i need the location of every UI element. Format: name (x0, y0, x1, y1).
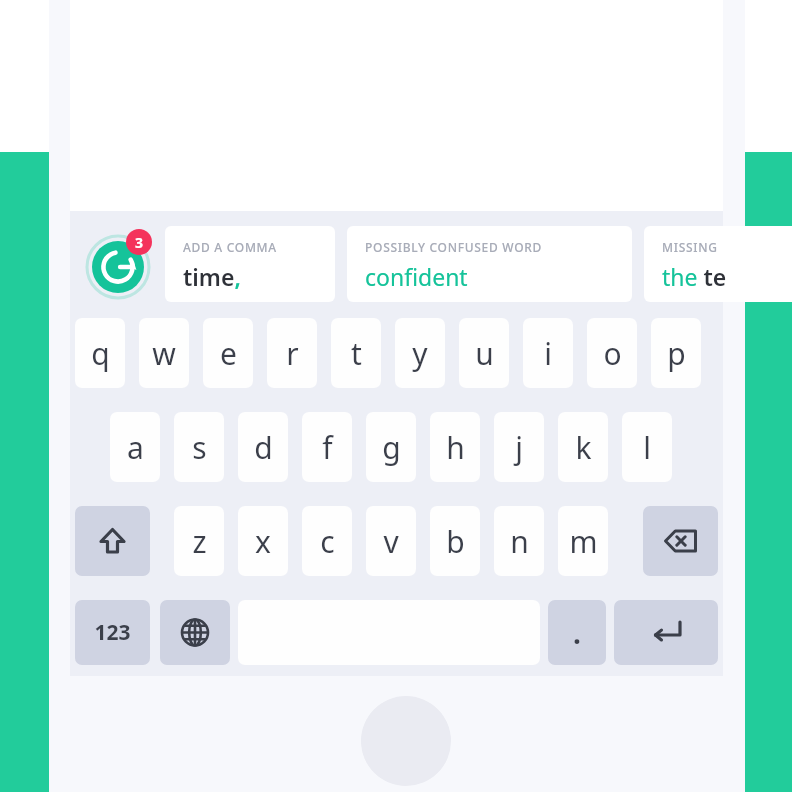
staticText: ADD A COMMA (183, 239, 277, 255)
staticText: i (544, 333, 552, 374)
button[interactable]: o (587, 318, 637, 388)
staticText: b (446, 521, 465, 562)
staticText: n (510, 521, 529, 562)
staticText: h (446, 427, 465, 468)
staticText: . (573, 614, 581, 652)
button[interactable]: Change keyboard (160, 600, 230, 665)
button[interactable]: POSSIBLY CONFUSED WORD (347, 226, 632, 302)
staticText: the te (662, 261, 727, 292)
staticText: time, (183, 261, 241, 292)
button[interactable]: v (366, 506, 416, 576)
staticText: y (412, 333, 428, 374)
button[interactable]: i (523, 318, 573, 388)
staticText: d (254, 427, 273, 468)
staticText: u (475, 333, 494, 374)
button[interactable]: n (494, 506, 544, 576)
button[interactable]: j (494, 412, 544, 482)
staticText: r (286, 333, 299, 374)
staticText: a (127, 427, 144, 468)
button[interactable]: u (459, 318, 509, 388)
button[interactable]: . (548, 600, 606, 665)
staticText: POSSIBLY CONFUSED WORD (365, 239, 543, 255)
staticText: confident (365, 261, 468, 292)
button[interactable]: e (203, 318, 253, 388)
button[interactable]: 123 (75, 600, 150, 665)
button[interactable]: s (174, 412, 224, 482)
staticText: 3 (135, 233, 144, 252)
button[interactable]: d (238, 412, 288, 482)
staticText: l (643, 427, 651, 468)
staticText: g (382, 427, 401, 468)
button[interactable]: q (75, 318, 125, 388)
button[interactable]: f (302, 412, 352, 482)
staticText: t (351, 333, 362, 374)
button[interactable]: p (651, 318, 701, 388)
staticText: MISSING (662, 239, 718, 255)
staticText: e (220, 333, 237, 374)
button[interactable]: m (558, 506, 608, 576)
button[interactable]: l (622, 412, 672, 482)
button[interactable]: g (366, 412, 416, 482)
button[interactable]: x (238, 506, 288, 576)
staticText: z (192, 521, 207, 562)
staticText: 123 (94, 618, 131, 647)
button[interactable]: ADD A COMMA (165, 226, 335, 302)
button[interactable]: Grammarly, 3 suggestions (82, 229, 154, 301)
staticText: m (569, 521, 598, 562)
button[interactable]: c (302, 506, 352, 576)
button[interactable]: r (267, 318, 317, 388)
button[interactable]: y (395, 318, 445, 388)
button[interactable]: t (331, 318, 381, 388)
button[interactable]: k (558, 412, 608, 482)
button[interactable]: Return (614, 600, 718, 665)
button[interactable]: a (110, 412, 160, 482)
button[interactable]: z (174, 506, 224, 576)
button[interactable]: Home (361, 696, 451, 786)
button[interactable]: w (139, 318, 189, 388)
button[interactable]: h (430, 412, 480, 482)
staticText: o (603, 333, 622, 374)
staticText: k (575, 427, 592, 468)
button[interactable]: Backspace (643, 506, 718, 576)
staticText: j (515, 427, 523, 468)
staticText: q (91, 333, 110, 374)
staticText: x (255, 521, 271, 562)
staticText: v (383, 521, 399, 562)
staticText: s (192, 427, 207, 468)
button[interactable]: Shift (75, 506, 150, 576)
staticText: w (152, 333, 176, 374)
staticText: c (320, 521, 335, 562)
button[interactable]: b (430, 506, 480, 576)
staticText: p (667, 333, 686, 374)
staticText: f (322, 427, 333, 468)
button[interactable]: MISSING (644, 226, 792, 302)
